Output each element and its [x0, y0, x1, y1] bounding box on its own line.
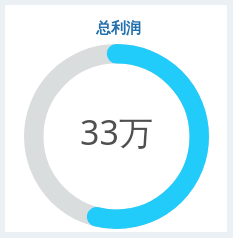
- staticText: 33万: [80, 109, 153, 155]
- other: 总利润进度环: [24, 44, 209, 229]
- button[interactable]: 总利润: [96, 19, 141, 38]
- staticText: 总利润: [96, 19, 141, 38]
- button[interactable]: 总利润: [5, 5, 227, 232]
